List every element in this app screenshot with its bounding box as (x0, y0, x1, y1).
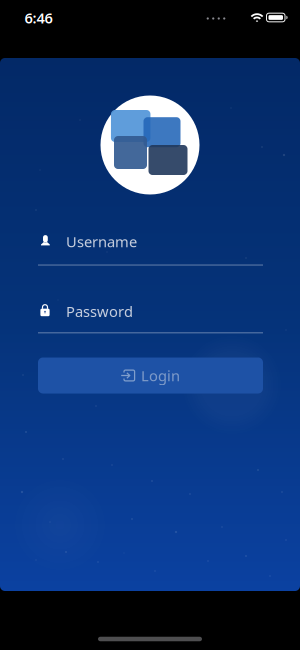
staticText: Username (66, 232, 137, 251)
staticText: Login (141, 366, 180, 385)
button[interactable]: Password (38, 300, 263, 334)
button[interactable]: Login (38, 357, 263, 393)
staticText: 6:46 (24, 8, 52, 28)
button[interactable]: Username (38, 230, 263, 266)
staticText: Password (66, 302, 133, 321)
